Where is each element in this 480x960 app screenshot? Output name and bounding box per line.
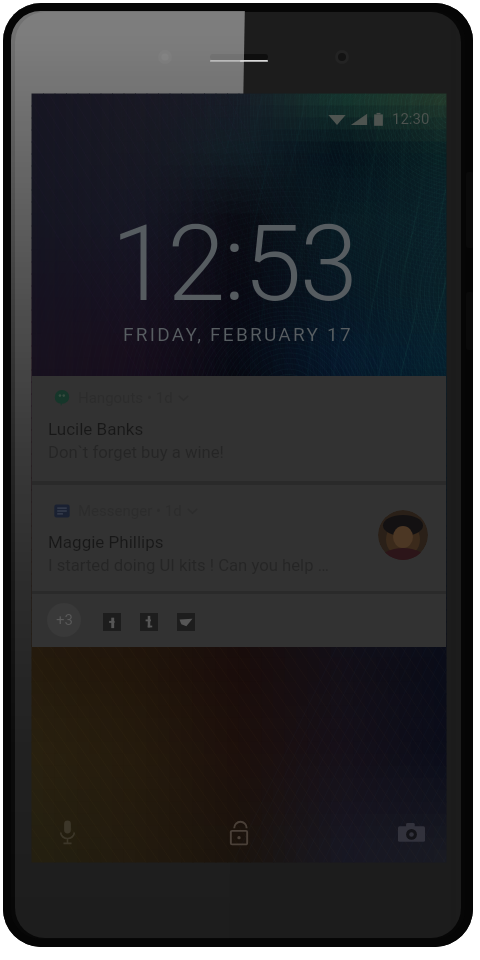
staticText: 12:30: [392, 110, 430, 128]
button[interactable]: Tumblr: [140, 613, 158, 631]
staticText: +3: [56, 611, 73, 629]
button[interactable]: Facebook: [103, 613, 121, 631]
staticText: 12:53: [111, 203, 357, 326]
staticText: FRIDAY, FEBRUARY 17: [123, 323, 353, 345]
staticText: I started doing UI kits ! Can you help …: [48, 556, 329, 576]
button[interactable]: Unlock: [221, 814, 257, 850]
staticText: Don`t forget buy a wine!: [48, 443, 224, 463]
button[interactable]: Camera: [393, 815, 429, 851]
staticText: Lucile Banks: [48, 419, 144, 439]
button[interactable]: Twitter: [177, 613, 195, 631]
button[interactable]: +3: [47, 603, 81, 637]
staticText: Maggie Phillips: [48, 532, 164, 552]
button[interactable]: Messenger: [32, 485, 446, 592]
button[interactable]: Voice search: [51, 816, 83, 848]
